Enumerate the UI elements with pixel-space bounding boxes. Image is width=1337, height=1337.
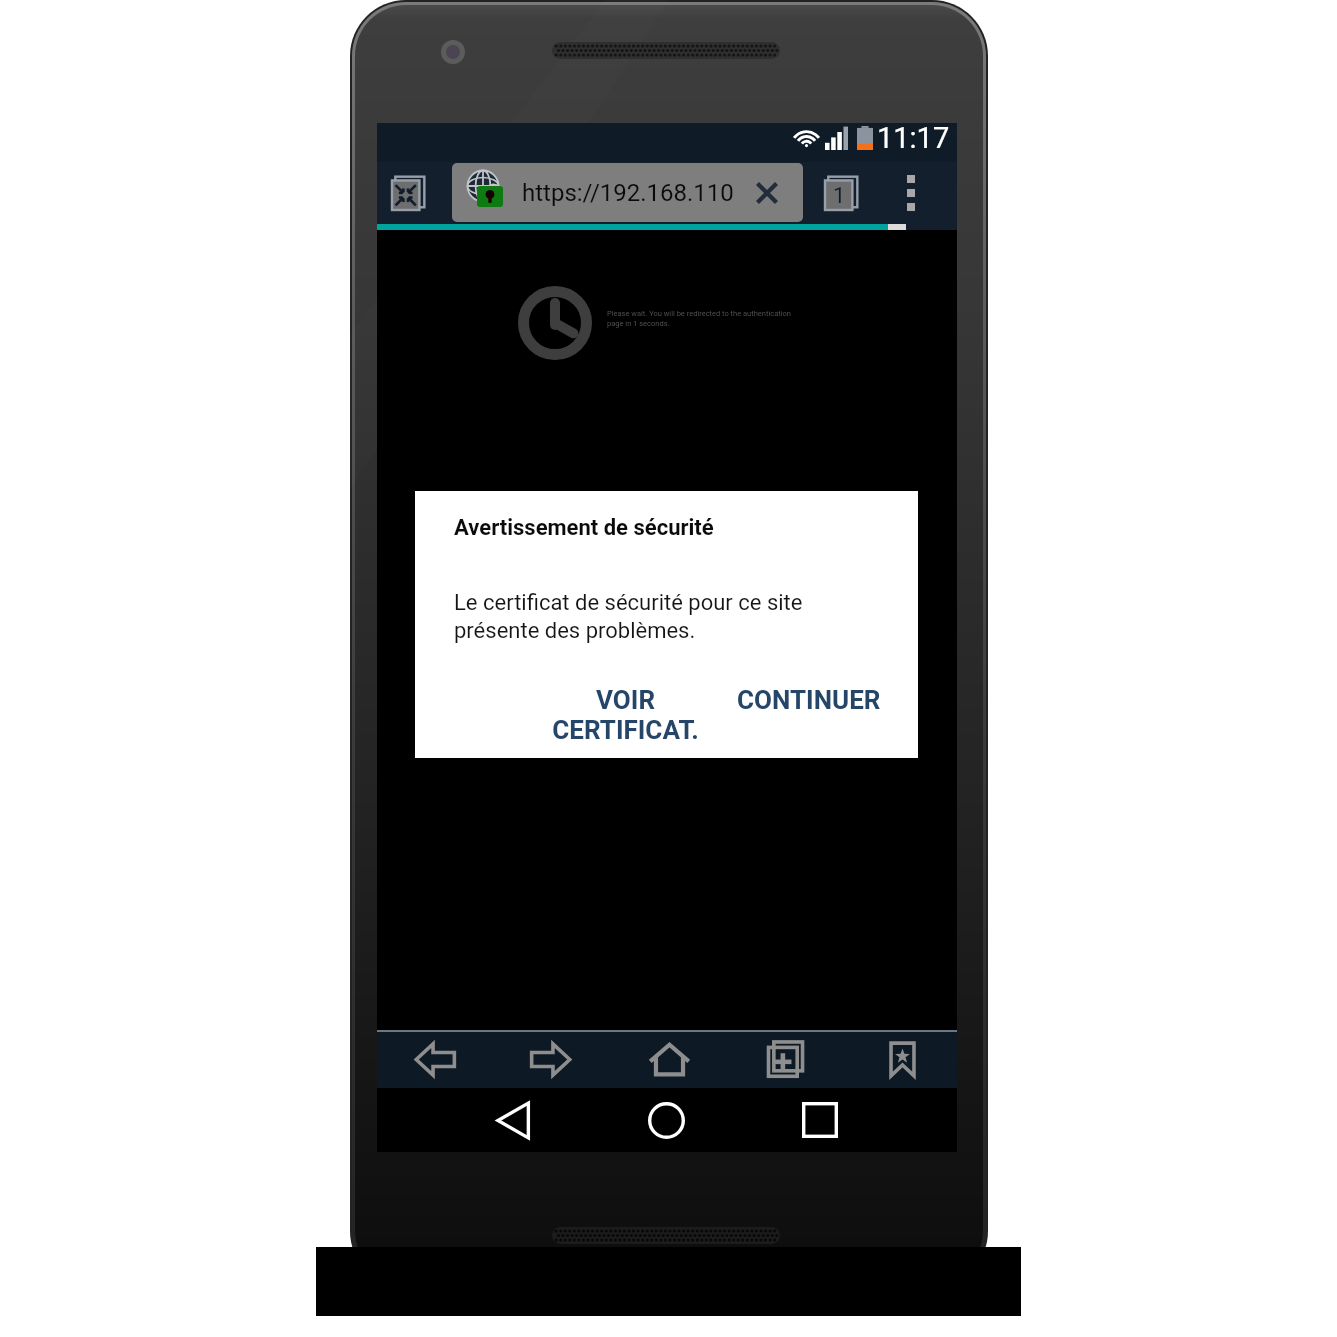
staticText: 11:17 <box>877 121 950 155</box>
staticText: VOIR CERTIFICAT. <box>520 685 731 745</box>
button[interactable]: Exit full screen <box>381 165 435 221</box>
button[interactable]: Recent apps <box>790 1088 850 1152</box>
button[interactable]: VOIR CERTIFICAT. <box>520 685 731 747</box>
button[interactable]: Home <box>640 1032 698 1087</box>
staticText: Please wait. You will be redirected to t… <box>607 309 791 328</box>
button[interactable]: CONTINUER <box>737 685 893 719</box>
button[interactable]: Bookmarks <box>873 1032 931 1087</box>
button[interactable]: Stop loading <box>740 165 794 220</box>
button[interactable]: Tabs <box>815 165 867 221</box>
button[interactable]: Back <box>483 1088 543 1152</box>
staticText: CONTINUER <box>737 685 881 715</box>
button[interactable]: Forward <box>521 1032 579 1087</box>
staticText: Avertissement de sécurité <box>454 515 714 541</box>
button[interactable]: Home <box>636 1088 696 1152</box>
staticText: https://192.168.110.1 <box>522 179 735 207</box>
button[interactable]: https://192.168.110.1 <box>452 163 803 222</box>
button[interactable]: Back <box>406 1032 464 1087</box>
staticText: Le certificat de sécurité pour ce site p… <box>454 590 803 644</box>
button[interactable]: More options <box>885 167 937 219</box>
button[interactable]: New tab <box>755 1032 813 1087</box>
staticText: 1 <box>833 183 846 209</box>
